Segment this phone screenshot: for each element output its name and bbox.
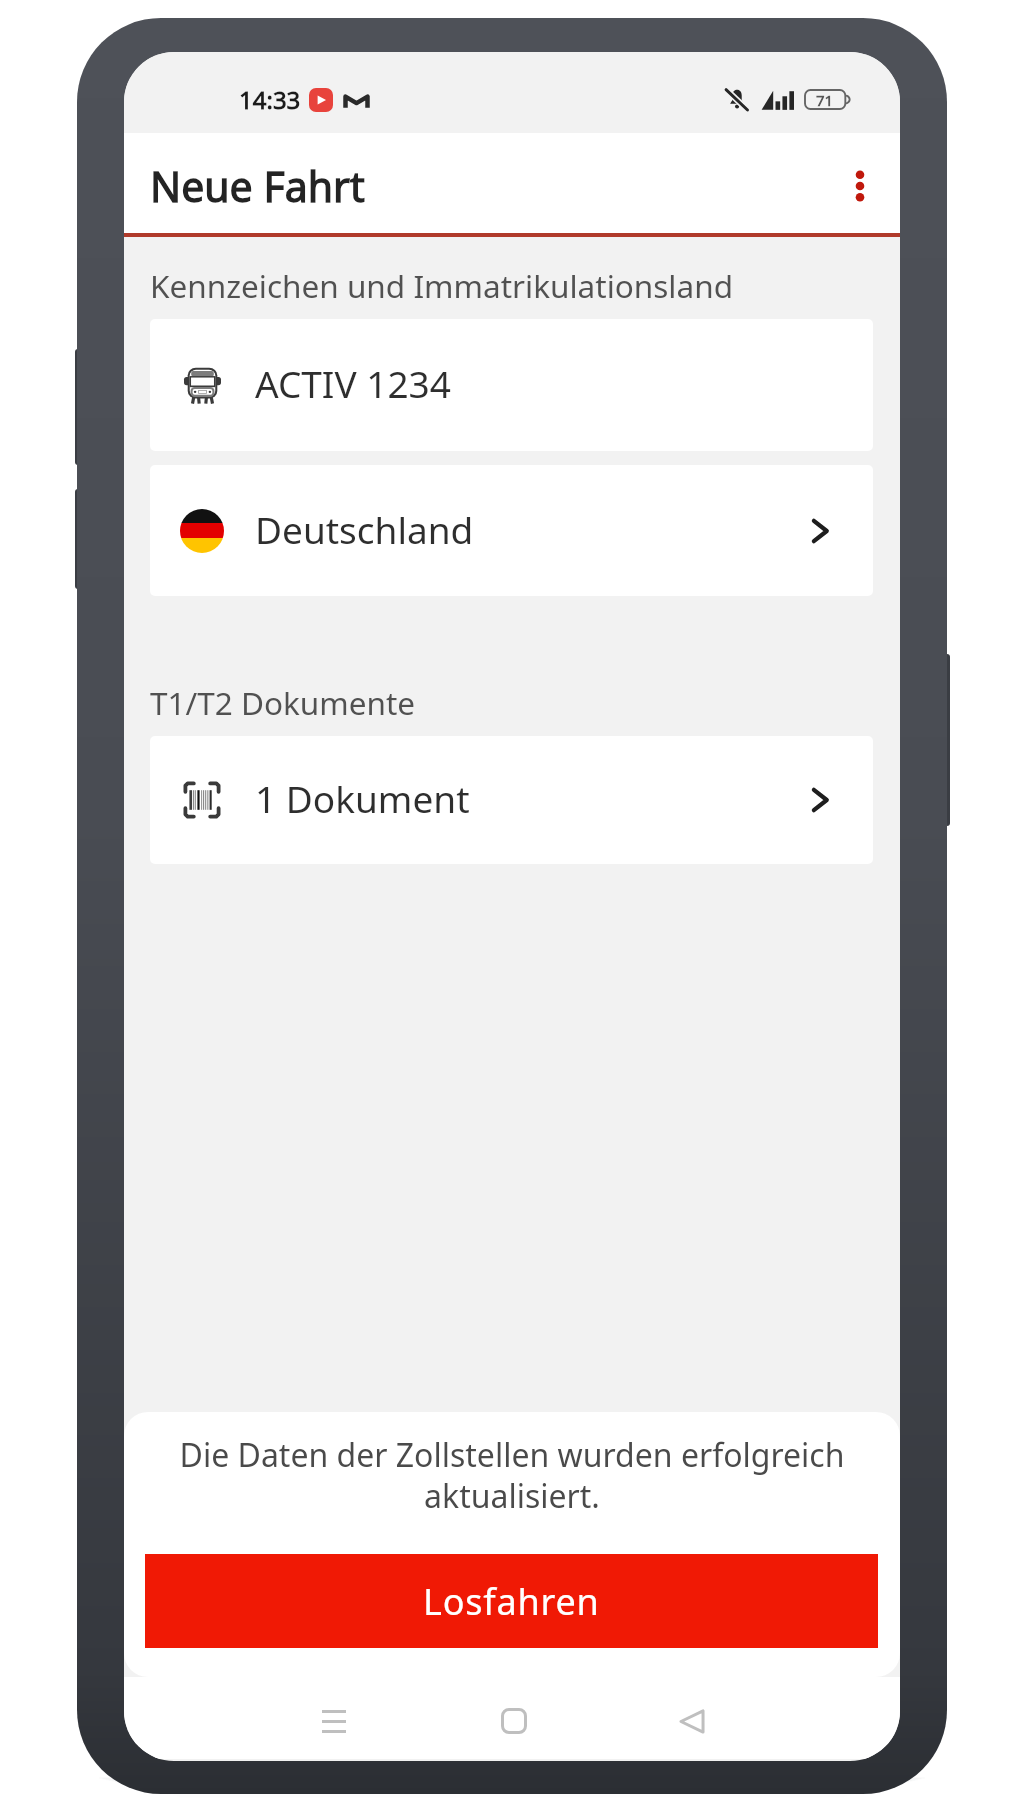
button[interactable]: Home — [478, 1685, 550, 1757]
staticText: Neue Fahrt — [150, 158, 365, 214]
staticText: 1 Dokument — [255, 773, 470, 823]
staticText: Die Daten der Zollstellen wurden erfolgr… — [154, 1433, 870, 1518]
button[interactable]: Recent apps — [298, 1685, 370, 1757]
staticText: Losfahren — [423, 1577, 600, 1626]
button[interactable]: Back — [656, 1685, 728, 1757]
staticText: ACTIV 1234 — [255, 358, 451, 408]
staticText: Deutschland — [255, 504, 474, 554]
staticText: T1/T2 Dokumente — [150, 681, 416, 724]
button[interactable]: ACTIV 1234 — [150, 319, 873, 451]
staticText: Kennzeichen und Immatrikulationsland — [150, 264, 734, 307]
button[interactable]: 1 Dokument — [150, 736, 873, 864]
button[interactable]: Deutschland — [150, 465, 873, 596]
button[interactable]: More options — [834, 160, 886, 212]
button[interactable]: Losfahren — [145, 1554, 878, 1648]
staticText: 71 — [816, 90, 834, 110]
staticText: 14:33 — [239, 83, 301, 116]
